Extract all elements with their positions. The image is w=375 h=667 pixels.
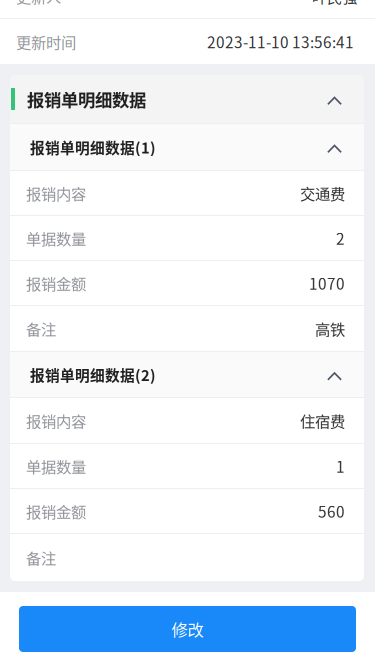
staticText: 报销单明细数据(1) <box>30 136 156 158</box>
staticText: 备注 <box>26 317 56 340</box>
staticText: 1 <box>336 455 345 477</box>
staticText: 报销单明细数据 <box>27 86 146 112</box>
staticText: 报销金额 <box>26 272 86 294</box>
staticText: 2 <box>336 227 345 249</box>
staticText: 更新时间 <box>16 30 76 53</box>
staticText: 交通费 <box>300 182 345 204</box>
button[interactable]: 修改 <box>0 592 375 667</box>
staticText: 住宿费 <box>300 409 345 432</box>
button[interactable]: 报销单明细数据(1) <box>10 124 364 171</box>
staticText: 修改 <box>171 617 203 641</box>
staticText: 单据数量 <box>26 227 86 249</box>
staticText: 单据数量 <box>26 455 86 477</box>
staticText: 2023-11-10 13:56:41 <box>207 30 354 53</box>
staticText: 报销金额 <box>26 500 86 522</box>
staticText: 报销内容 <box>26 409 86 432</box>
button[interactable]: 报销单明细数据 <box>10 75 364 124</box>
staticText: 报销内容 <box>26 182 86 204</box>
staticText: 叶民强 <box>312 0 357 7</box>
staticText: 1070 <box>309 272 345 294</box>
staticText: 备注 <box>26 546 56 569</box>
staticText: 560 <box>318 500 345 522</box>
staticText: 高铁 <box>315 317 345 340</box>
staticText: 更新人 <box>16 0 61 7</box>
button[interactable]: 报销单明细数据(2) <box>10 352 364 398</box>
staticText: 报销单明细数据(2) <box>30 364 156 385</box>
